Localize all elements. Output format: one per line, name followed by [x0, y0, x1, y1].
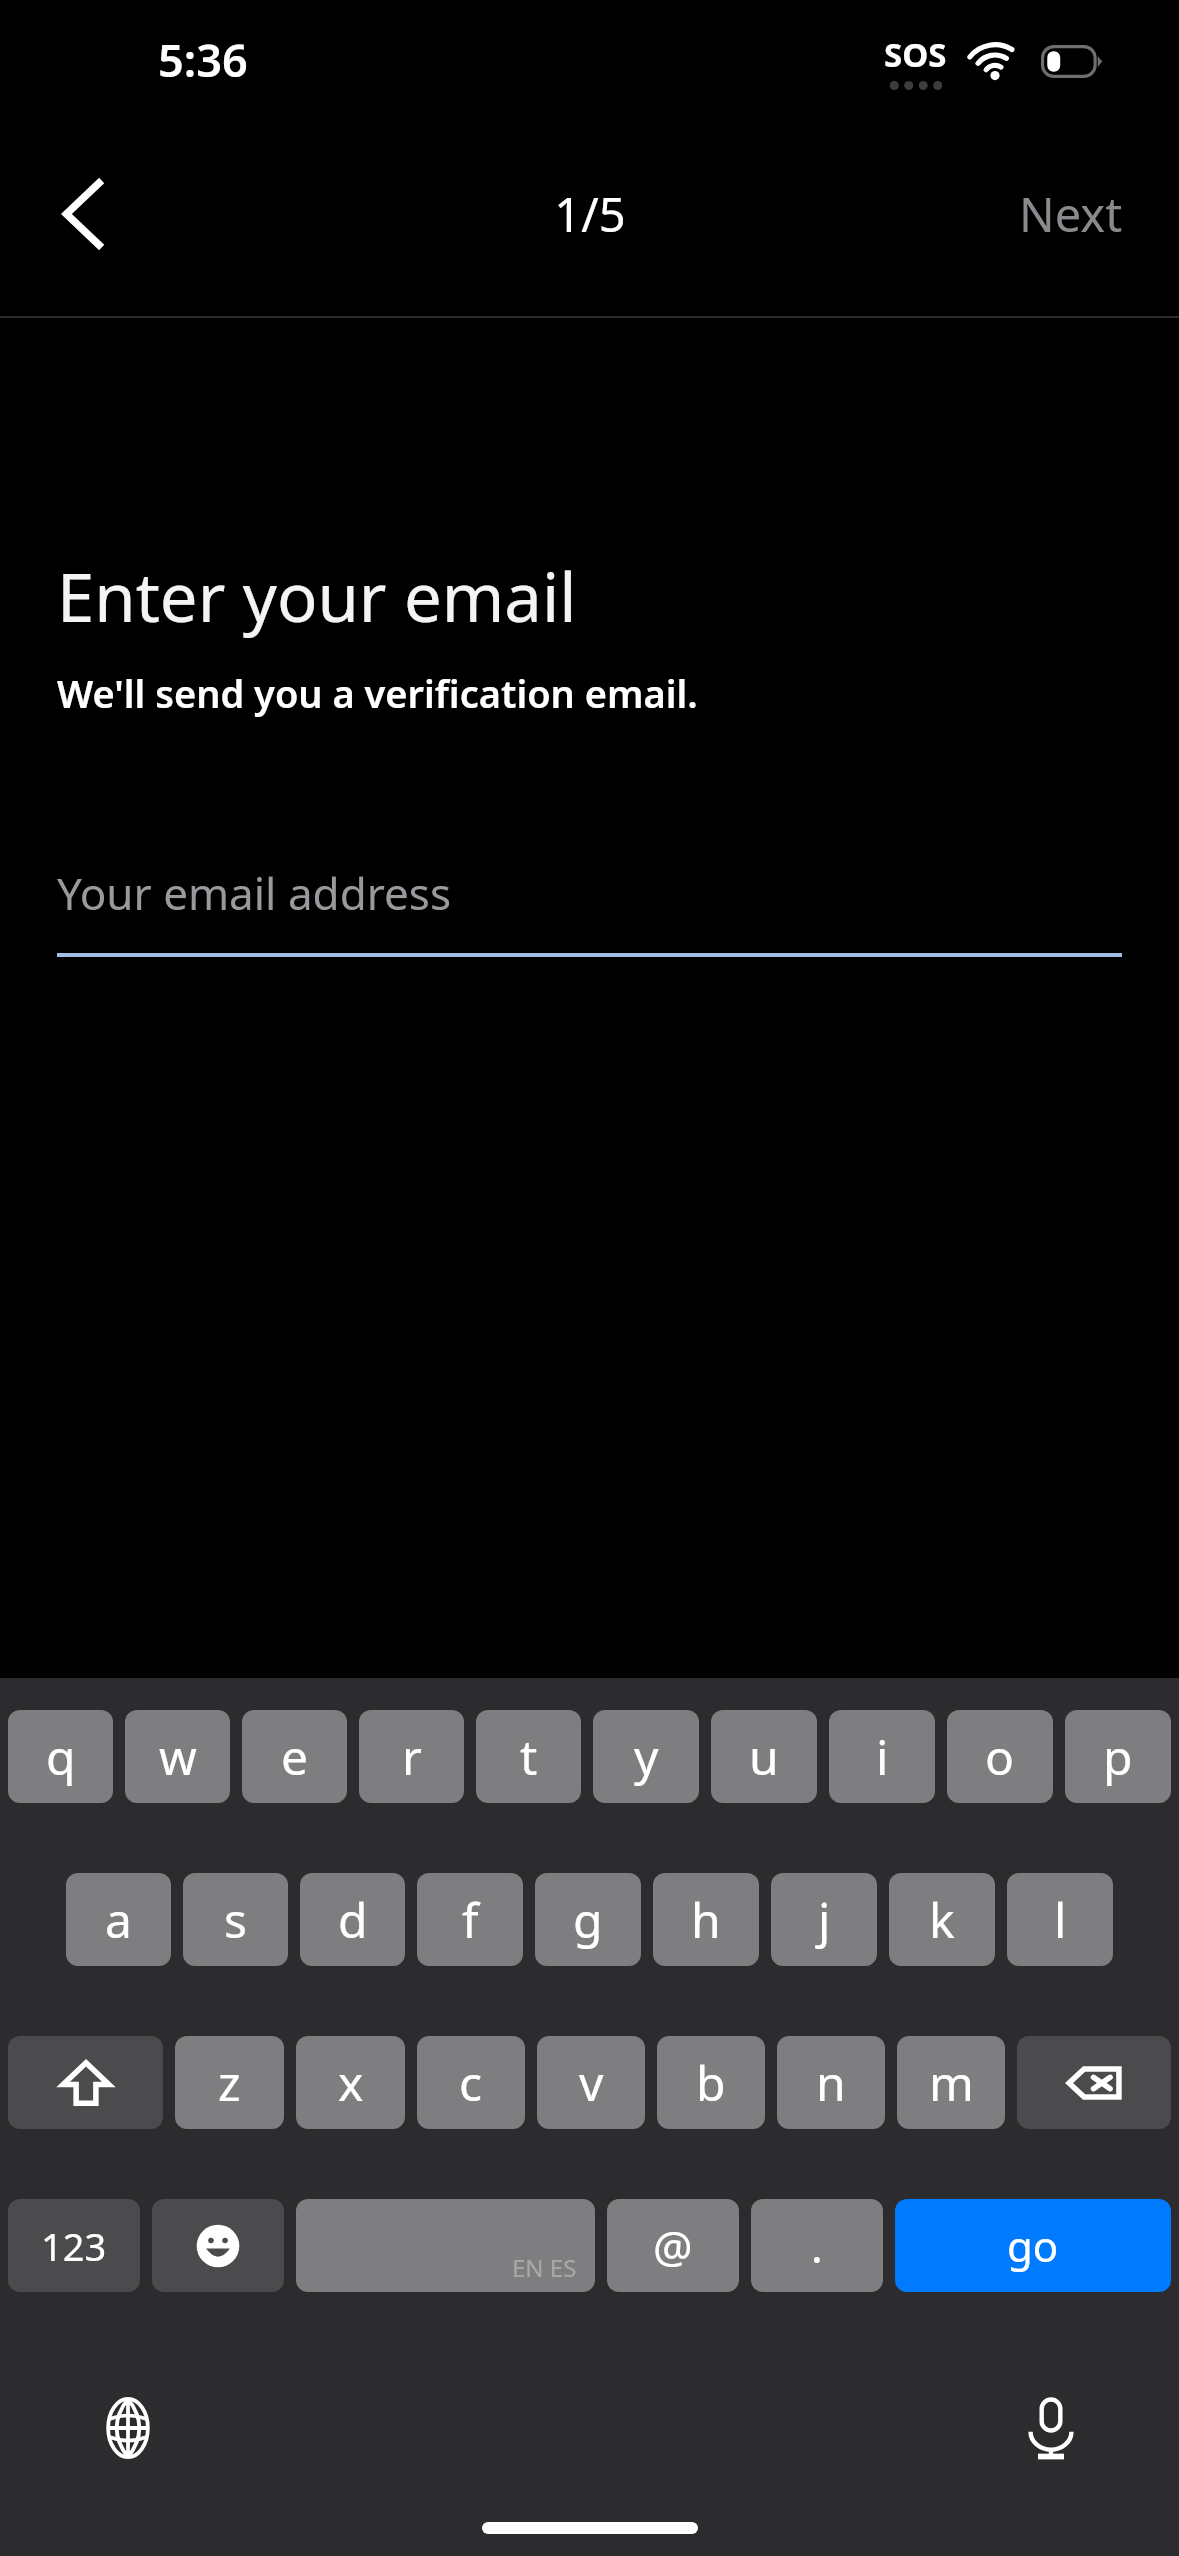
button[interactable]: f	[417, 1873, 523, 1966]
button[interactable]: Voice input	[1005, 2382, 1097, 2474]
button[interactable]: c	[417, 2036, 525, 2129]
button[interactable]: Back	[36, 166, 132, 262]
staticText: y	[634, 1724, 659, 1789]
button[interactable]: i	[829, 1710, 935, 1803]
button[interactable]: .	[751, 2199, 883, 2292]
button[interactable]: u	[711, 1710, 817, 1803]
button[interactable]: Emoji	[152, 2199, 284, 2292]
staticText: p	[1103, 1724, 1133, 1789]
staticText: Enter your email	[57, 550, 577, 641]
button[interactable]: p	[1065, 1710, 1171, 1803]
button[interactable]: l	[1007, 1873, 1113, 1966]
staticText: SOS	[884, 32, 947, 77]
button[interactable]: Your email address	[57, 851, 1122, 957]
button[interactable]: Backspace	[1017, 2036, 1171, 2129]
staticText: Next	[1019, 182, 1123, 246]
staticText: b	[696, 2050, 726, 2115]
staticText: l	[1054, 1887, 1067, 1952]
staticText: .	[811, 2216, 823, 2276]
staticText: 1/5	[554, 182, 626, 246]
button[interactable]: j	[771, 1873, 877, 1966]
staticText: v	[579, 2050, 604, 2115]
staticText: EN ES	[512, 2251, 577, 2284]
staticText: Your email address	[57, 863, 451, 923]
button[interactable]: Shift	[8, 2036, 163, 2129]
staticText: c	[459, 2050, 483, 2115]
staticText: w	[159, 1724, 197, 1789]
staticText: go	[1007, 2217, 1059, 2274]
staticText: r	[402, 1724, 422, 1789]
button[interactable]: g	[535, 1873, 641, 1966]
button[interactable]: t	[476, 1710, 581, 1803]
button[interactable]: d	[300, 1873, 405, 1966]
button[interactable]: h	[653, 1873, 759, 1966]
button[interactable]: w	[125, 1710, 230, 1803]
button[interactable]: q	[8, 1710, 113, 1803]
button[interactable]: v	[537, 2036, 645, 2129]
staticText: @	[653, 2216, 693, 2276]
staticText: m	[929, 2050, 974, 2115]
staticText: u	[749, 1724, 779, 1789]
staticText: e	[281, 1724, 309, 1789]
staticText: o	[985, 1724, 1015, 1789]
staticText: k	[929, 1887, 955, 1952]
button[interactable]: s	[183, 1873, 288, 1966]
staticText: x	[338, 2050, 364, 2115]
staticText: j	[818, 1887, 831, 1952]
button[interactable]: 123	[8, 2199, 140, 2292]
button[interactable]: Space	[296, 2199, 595, 2292]
staticText: z	[218, 2050, 241, 2115]
staticText: f	[462, 1887, 479, 1952]
staticText: g	[573, 1887, 603, 1952]
button[interactable]: z	[175, 2036, 284, 2129]
staticText: 5:36	[158, 29, 248, 90]
button[interactable]: k	[889, 1873, 995, 1966]
button[interactable]: y	[593, 1710, 699, 1803]
button[interactable]: o	[947, 1710, 1053, 1803]
staticText: a	[105, 1887, 132, 1952]
button[interactable]: Change keyboard	[82, 2382, 174, 2474]
button[interactable]: m	[897, 2036, 1005, 2129]
staticText: d	[338, 1887, 368, 1952]
staticText: t	[520, 1724, 538, 1789]
button[interactable]: x	[296, 2036, 405, 2129]
button[interactable]: Next	[1001, 166, 1141, 262]
staticText: s	[224, 1887, 247, 1952]
button[interactable]: e	[242, 1710, 347, 1803]
button[interactable]: n	[777, 2036, 885, 2129]
staticText: We'll send you a verification email.	[57, 667, 698, 719]
button[interactable]: go	[895, 2199, 1171, 2292]
staticText: i	[876, 1724, 889, 1789]
button[interactable]: b	[657, 2036, 765, 2129]
button[interactable]: a	[66, 1873, 171, 1966]
staticText: q	[46, 1724, 76, 1789]
staticText: 123	[41, 2220, 107, 2272]
button[interactable]: r	[359, 1710, 464, 1803]
staticText: n	[816, 2050, 846, 2115]
staticText: h	[691, 1887, 721, 1952]
button[interactable]: @	[607, 2199, 739, 2292]
